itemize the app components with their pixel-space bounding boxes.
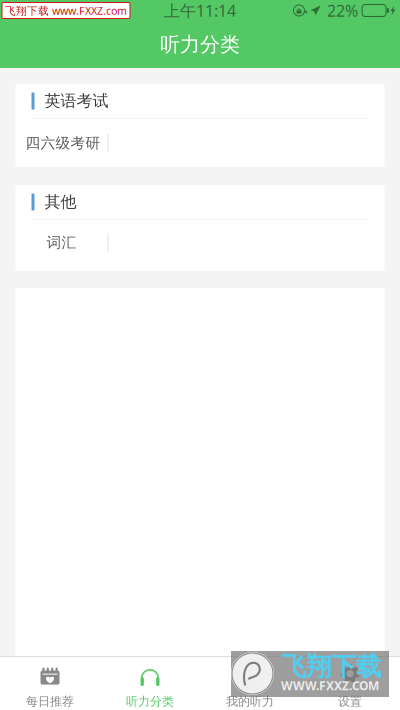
staticText: 听力分类	[126, 694, 174, 709]
button[interactable]: 设置	[300, 657, 400, 710]
button[interactable]: 我的听力	[200, 657, 300, 710]
staticText: 英语考试	[44, 91, 108, 111]
staticText: 词汇	[46, 233, 76, 251]
staticText: 每日推荐	[26, 694, 74, 709]
staticText: 飞翔下载	[281, 651, 381, 682]
staticText: 飞翔下载 www.FXXZ.com	[5, 3, 127, 18]
staticText: 设置	[338, 694, 362, 709]
staticText: 四六级考研	[25, 134, 100, 152]
button[interactable]: 每日推荐	[0, 657, 100, 710]
staticText: 上午11:14	[164, 0, 236, 21]
staticText: 22%	[327, 0, 358, 21]
staticText: WWW.FXXZ.COM	[281, 677, 379, 693]
button[interactable]: 四六级考研	[15, 119, 384, 167]
staticText: 听力分类	[160, 32, 240, 57]
button[interactable]: 词汇	[15, 220, 384, 271]
staticText: 我的听力	[226, 694, 274, 709]
staticText: 其他	[44, 192, 76, 212]
button[interactable]: 听力分类	[100, 657, 200, 710]
